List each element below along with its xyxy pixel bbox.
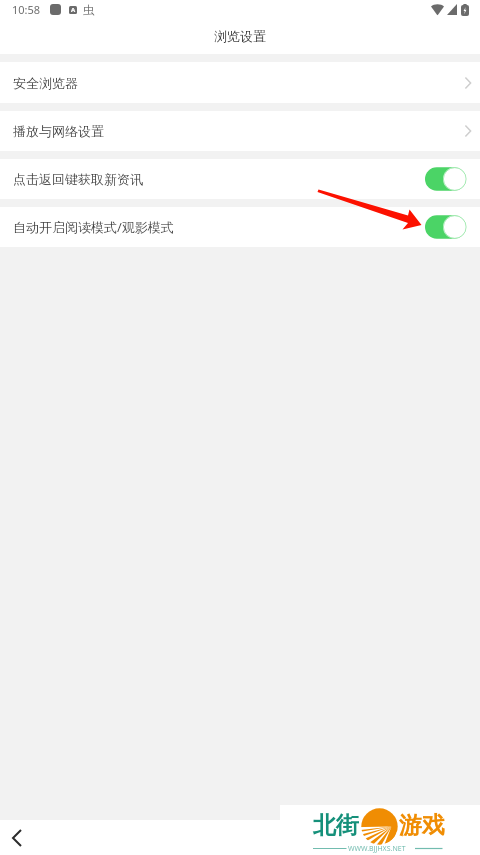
- staticText: 播放与网络设置: [13, 123, 104, 139]
- button[interactable]: 点击返回键获取新资讯: [0, 159, 480, 199]
- staticText: 自动开启阅读模式/观影模式: [13, 218, 174, 236]
- staticText: 浏览设置: [214, 28, 266, 44]
- button[interactable]: 自动开启阅读模式/观影模式: [0, 207, 480, 247]
- staticText: WWW.BJJHXS.NET: [348, 844, 406, 854]
- staticText: 点击返回键获取新资讯: [13, 171, 143, 187]
- button[interactable]: Toggle: [425, 215, 467, 239]
- staticText: 北街: [313, 811, 359, 840]
- button[interactable]: 安全浏览器: [0, 62, 480, 103]
- button[interactable]: 播放与网络设置: [0, 111, 480, 151]
- staticText: 10:58: [12, 2, 41, 17]
- staticText: 安全浏览器: [13, 75, 78, 91]
- button[interactable]: Back: [0, 820, 34, 855]
- staticText: A: [71, 6, 76, 14]
- button[interactable]: Toggle: [425, 167, 467, 191]
- staticText: 游戏: [399, 811, 445, 840]
- staticText: 虫: [83, 3, 95, 17]
